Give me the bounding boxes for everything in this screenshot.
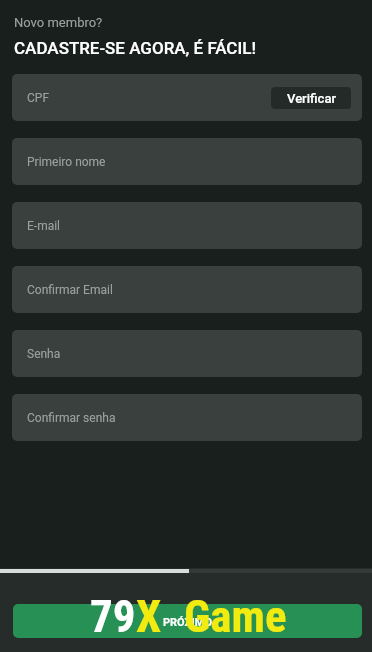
staticText: E-mail [27,219,61,233]
button[interactable]: PRÓXIMO [13,604,362,638]
button[interactable]: Verificar [271,87,351,109]
staticText: X [136,590,162,643]
staticText: Confirmar senha [27,411,116,425]
button[interactable]: Confirmar Email [12,266,362,313]
button[interactable]: Senha [12,330,362,377]
staticText: Senha [27,347,61,361]
staticText: Game [184,590,287,643]
staticText: Confirmar Email [27,283,113,297]
staticText: 79 [90,590,136,643]
button[interactable]: CPF [12,74,362,121]
staticText: Novo membro? [14,15,103,30]
staticText: CPF [27,91,50,105]
button[interactable]: Primeiro nome [12,138,362,185]
button[interactable]: Confirmar senha [12,394,362,441]
staticText: Verificar [287,91,336,106]
staticText: CADASTRE-SE AGORA, É FÁCIL! [14,38,256,58]
button[interactable]: E-mail [12,202,362,249]
staticText: Primeiro nome [27,155,106,169]
staticText: PRÓXIMO [163,616,213,629]
